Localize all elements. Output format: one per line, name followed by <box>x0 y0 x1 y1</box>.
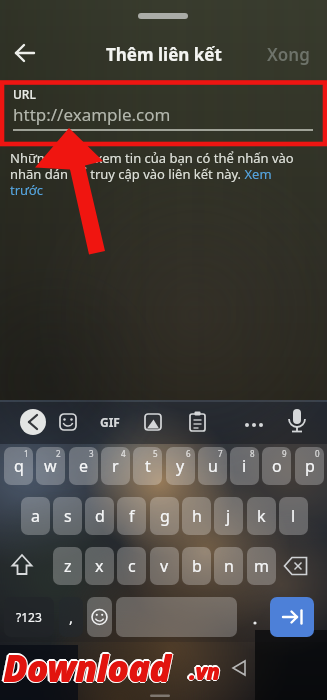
staticText: Xong <box>267 43 310 66</box>
button[interactable]: Xong <box>267 43 310 66</box>
button[interactable] <box>184 407 212 437</box>
button[interactable]: v <box>150 547 179 585</box>
button[interactable]: x <box>85 547 114 585</box>
button[interactable] <box>253 162 287 178</box>
staticText: Download <box>3 645 171 693</box>
button[interactable]: k <box>247 497 276 535</box>
button[interactable] <box>270 597 314 637</box>
staticText: l <box>291 505 296 527</box>
button[interactable]: g <box>150 497 179 535</box>
staticText: .vn <box>187 657 218 686</box>
button[interactable]: b <box>182 547 211 585</box>
button[interactable] <box>2 82 325 144</box>
staticText: Download <box>1 644 169 692</box>
button[interactable]: y <box>166 447 195 485</box>
staticText: .vn <box>189 657 220 686</box>
button[interactable]: o <box>262 447 291 485</box>
staticText: 7 <box>218 448 223 459</box>
staticText: v <box>160 555 169 577</box>
button[interactable] <box>8 178 50 196</box>
staticText: a <box>31 505 40 527</box>
staticText: http://example.com <box>13 103 171 126</box>
staticText: Thêm liên kết <box>106 43 222 66</box>
staticText: , <box>69 607 74 627</box>
staticText: q <box>14 455 24 477</box>
staticText: ?123 <box>16 609 42 625</box>
staticText: .vn <box>188 656 219 685</box>
staticText: 4 <box>121 448 126 459</box>
staticText: x <box>95 555 104 577</box>
staticText: Những người xem tin của bạn có thể nhấn … <box>10 149 294 167</box>
button[interactable] <box>243 597 267 637</box>
staticText: URL <box>13 86 36 102</box>
button[interactable] <box>282 407 312 437</box>
staticText: o <box>272 455 282 477</box>
staticText: s <box>64 505 72 527</box>
button[interactable]: e <box>69 447 98 485</box>
staticText: y <box>176 455 185 477</box>
staticText: 3 <box>89 448 94 459</box>
staticText: .vn <box>189 659 220 688</box>
button[interactable] <box>238 407 270 437</box>
staticText: .vn <box>189 658 220 687</box>
staticText: 8 <box>250 448 255 459</box>
staticText: Download <box>3 644 171 692</box>
staticText: 0 <box>315 448 320 459</box>
staticText: .vn <box>188 658 219 687</box>
button[interactable] <box>116 597 237 637</box>
staticText: GIF <box>100 414 120 430</box>
button[interactable]: m <box>247 547 276 585</box>
staticText: Download <box>4 643 172 691</box>
button[interactable] <box>94 407 128 437</box>
button[interactable]: h <box>182 497 211 535</box>
staticText: .vn <box>190 658 221 687</box>
button[interactable]: , <box>59 597 83 637</box>
button[interactable]: t <box>133 447 162 485</box>
button[interactable]: c <box>117 547 146 585</box>
staticText: Download <box>4 645 172 693</box>
staticText: Download <box>3 646 171 694</box>
button[interactable] <box>56 407 84 437</box>
staticText: trước <box>10 181 44 199</box>
staticText: Download <box>5 644 173 692</box>
button[interactable]: d <box>85 497 114 535</box>
staticText: 2 <box>56 448 61 459</box>
staticText: .vn <box>190 656 221 685</box>
button[interactable] <box>8 38 44 68</box>
button[interactable] <box>4 547 46 585</box>
staticText: i <box>242 455 247 477</box>
staticText: w <box>44 455 57 477</box>
button[interactable] <box>87 597 112 637</box>
button[interactable]: l <box>279 497 308 535</box>
button[interactable] <box>18 407 48 437</box>
staticText: .vn <box>191 657 222 686</box>
staticText: h <box>192 505 202 527</box>
button[interactable]: ?123 <box>4 597 54 637</box>
staticText: e <box>79 455 89 477</box>
staticText: k <box>257 505 266 527</box>
button[interactable]: n <box>214 547 243 585</box>
button[interactable]: z <box>53 547 82 585</box>
button[interactable]: r <box>101 447 130 485</box>
button[interactable]: j <box>214 497 243 535</box>
button[interactable]: s <box>53 497 82 535</box>
staticText: Download <box>2 643 170 691</box>
button[interactable]: w <box>36 447 65 485</box>
button[interactable] <box>228 656 252 680</box>
button[interactable]: q <box>4 447 33 485</box>
staticText: 6 <box>186 448 191 459</box>
staticText: 1 <box>24 448 29 459</box>
staticText: .vn <box>190 658 221 687</box>
button[interactable]: i <box>230 447 259 485</box>
button[interactable]: p <box>295 447 324 485</box>
staticText: .vn <box>189 655 220 684</box>
staticText: p <box>305 455 315 477</box>
staticText: n <box>224 555 234 577</box>
staticText: Download <box>4 645 172 693</box>
button[interactable] <box>279 547 321 585</box>
button[interactable]: a <box>21 497 50 535</box>
button[interactable]: u <box>198 447 227 485</box>
button[interactable]: f <box>117 497 146 535</box>
button[interactable] <box>139 407 167 437</box>
staticText: t <box>145 455 151 477</box>
